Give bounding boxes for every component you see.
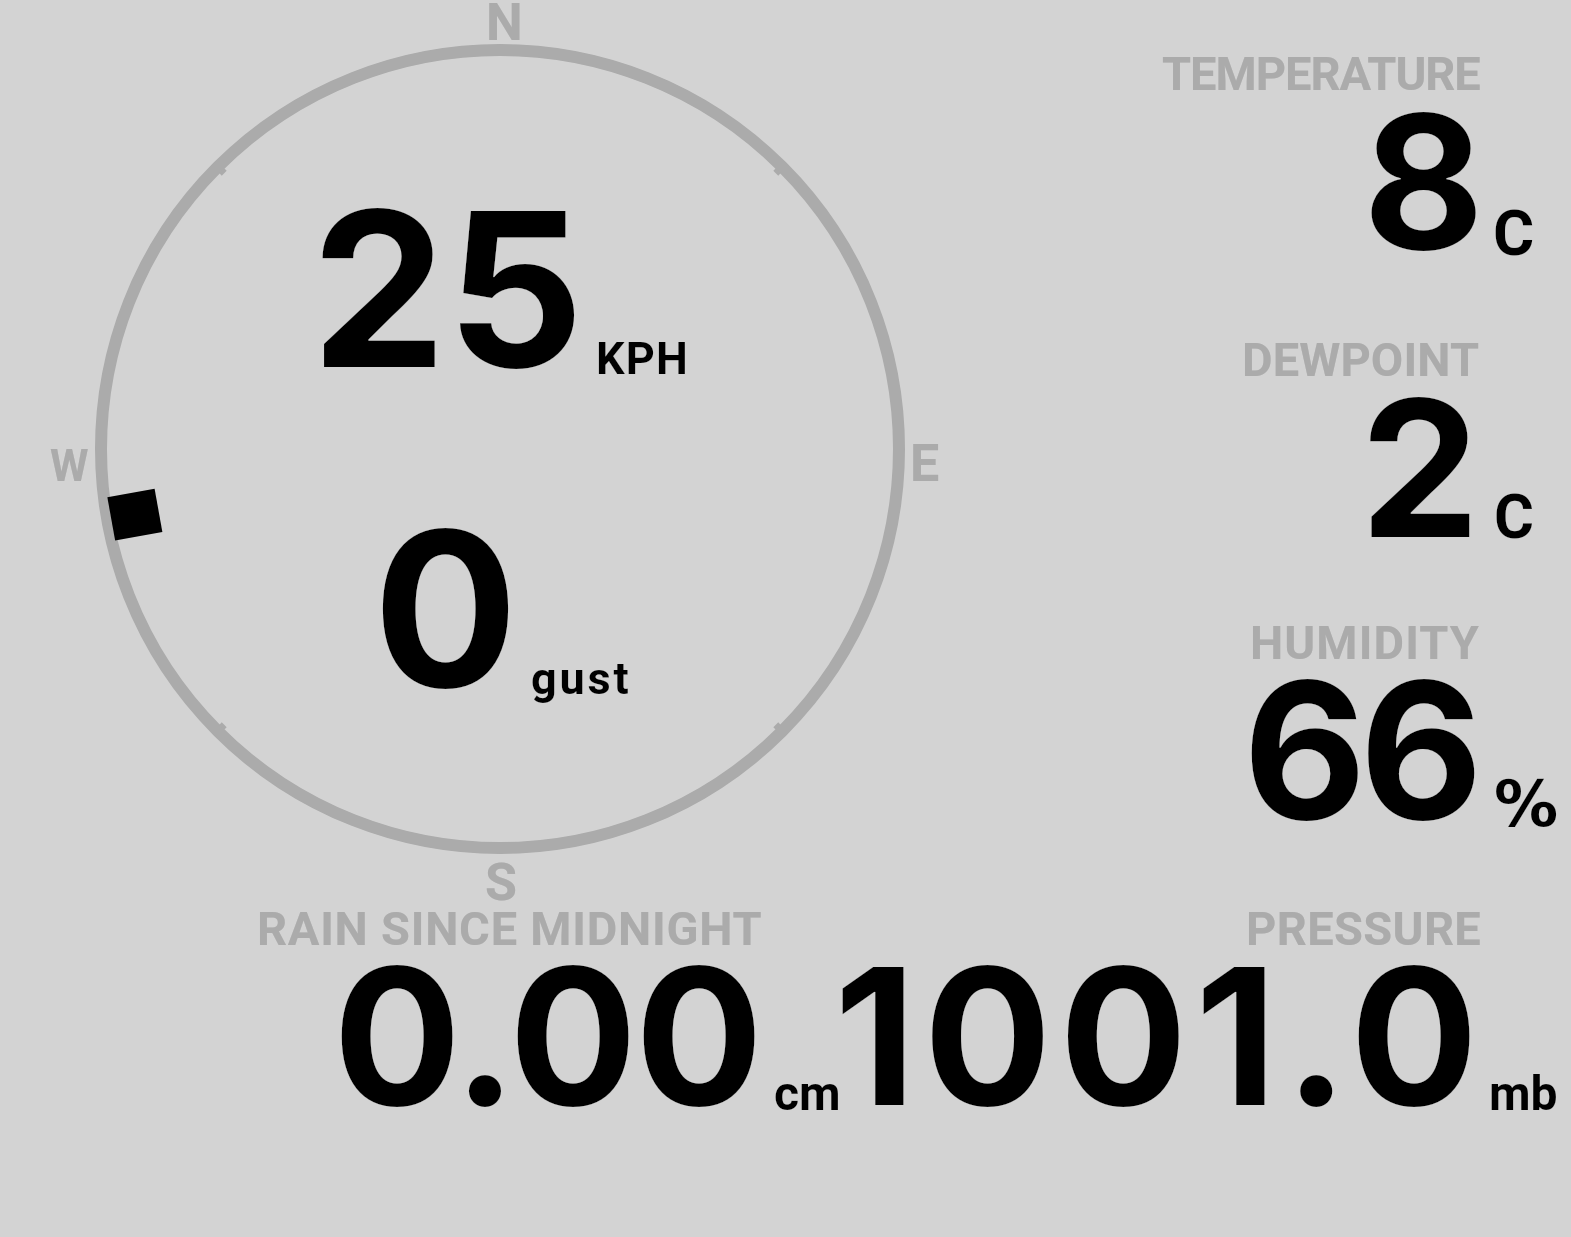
staticText: N (486, 0, 523, 53)
staticText: cm (774, 1065, 841, 1121)
staticText: W (50, 440, 89, 492)
staticText: 8 (1363, 69, 1485, 294)
staticText: C (1494, 481, 1534, 552)
button[interactable]: Wind direction dial, 25 KPH, gust 0 (96, 44, 906, 856)
staticText: TEMPERATURE (1162, 46, 1480, 101)
staticText: S (485, 852, 517, 913)
button[interactable]: Rain since midnight 0.00 cm (240, 895, 860, 1125)
staticText: 66 (1243, 635, 1476, 865)
staticText: RAIN SINCE MIDNIGHT (257, 901, 763, 956)
staticText: DEWPOINT (1242, 332, 1480, 387)
staticText: 25 (311, 159, 584, 419)
button[interactable]: Dewpoint 2 degrees C (1100, 325, 1560, 585)
staticText: 1001.0 (834, 921, 1486, 1151)
staticText: mb (1489, 1065, 1558, 1121)
staticText: PRESSURE (1246, 901, 1482, 956)
staticText: HUMIDITY (1250, 615, 1481, 670)
staticText: KPH (596, 332, 690, 385)
staticText: E (910, 433, 940, 494)
staticText: % (1494, 767, 1559, 842)
staticText: gust (531, 652, 632, 705)
staticText: 2 (1360, 353, 1480, 583)
button[interactable]: Pressure 1001.0 mb (870, 895, 1570, 1125)
button[interactable]: Humidity 66 percent (1100, 605, 1560, 865)
button[interactable]: Temperature 8 degrees C (1100, 40, 1560, 310)
staticText: C (1493, 197, 1535, 271)
staticText: 0.00 (333, 921, 761, 1151)
staticText: 0 (373, 479, 518, 739)
